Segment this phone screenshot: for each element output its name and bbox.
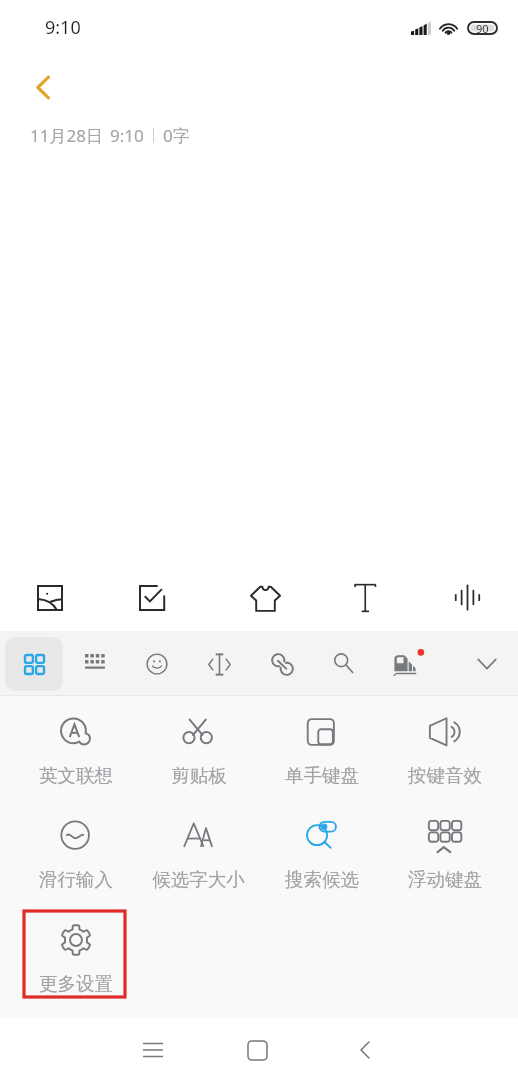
button[interactable]: Text format [341,573,391,623]
staticText: 滑行输入 [39,868,113,891]
button[interactable]: Voice input [442,572,492,622]
staticText: 更多设置 [39,972,113,995]
staticText: 搜索候选 [285,868,359,891]
button[interactable]: Back [341,1026,389,1074]
button[interactable]: Back [20,65,64,109]
button[interactable]: Recent apps [129,1026,177,1074]
button[interactable]: Home [233,1026,281,1074]
button[interactable]: Style [240,573,290,623]
button[interactable]: 更多设置 [14,906,137,994]
staticText: 英文联想 [39,764,113,787]
button[interactable]: Collapse keyboard [459,637,515,691]
button[interactable]: Search [315,636,371,690]
button[interactable]: Skin [379,637,435,691]
button[interactable]: 按键音效 [383,698,506,786]
button[interactable]: 浮动键盘 [383,802,506,890]
button[interactable]: 单手键盘 [260,698,383,786]
button[interactable]: Cursor control [191,637,247,691]
button[interactable]: Link [254,637,310,691]
button[interactable]: Panel [5,637,63,691]
staticText: 11月28日 [30,124,103,147]
staticText: 候选字大小 [152,868,245,891]
staticText: 0字 [163,124,190,147]
button[interactable]: Keyboard [67,637,123,691]
button[interactable]: 搜索候选 [260,802,383,890]
button[interactable]: 候选字大小 [137,802,260,890]
staticText: 按键音效 [408,764,482,787]
button[interactable]: Emoji [129,637,185,691]
staticText: 90 [476,21,489,35]
staticText: 9:10 [110,124,144,147]
staticText: 9:10 [45,15,81,40]
staticText: 浮动键盘 [408,868,482,891]
staticText: 单手键盘 [285,764,359,787]
button[interactable]: 剪贴板 [137,698,260,786]
button[interactable]: 英文联想 [14,698,137,786]
button[interactable]: Checklist [127,573,177,623]
staticText: 剪贴板 [171,764,227,787]
button[interactable]: Insert image [25,573,75,623]
button[interactable]: 滑行输入 [14,802,137,890]
